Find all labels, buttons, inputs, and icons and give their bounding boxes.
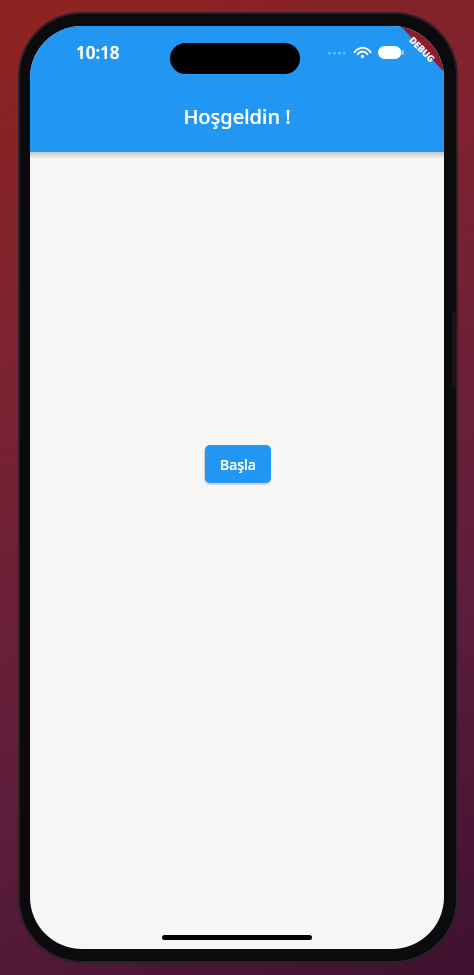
staticText: DEBUG [407, 34, 438, 64]
staticText: 10:18 [76, 41, 120, 64]
staticText: Hoşgeldin ! [30, 103, 444, 130]
staticText: Başla [220, 455, 256, 474]
button[interactable]: Başla [205, 445, 271, 483]
